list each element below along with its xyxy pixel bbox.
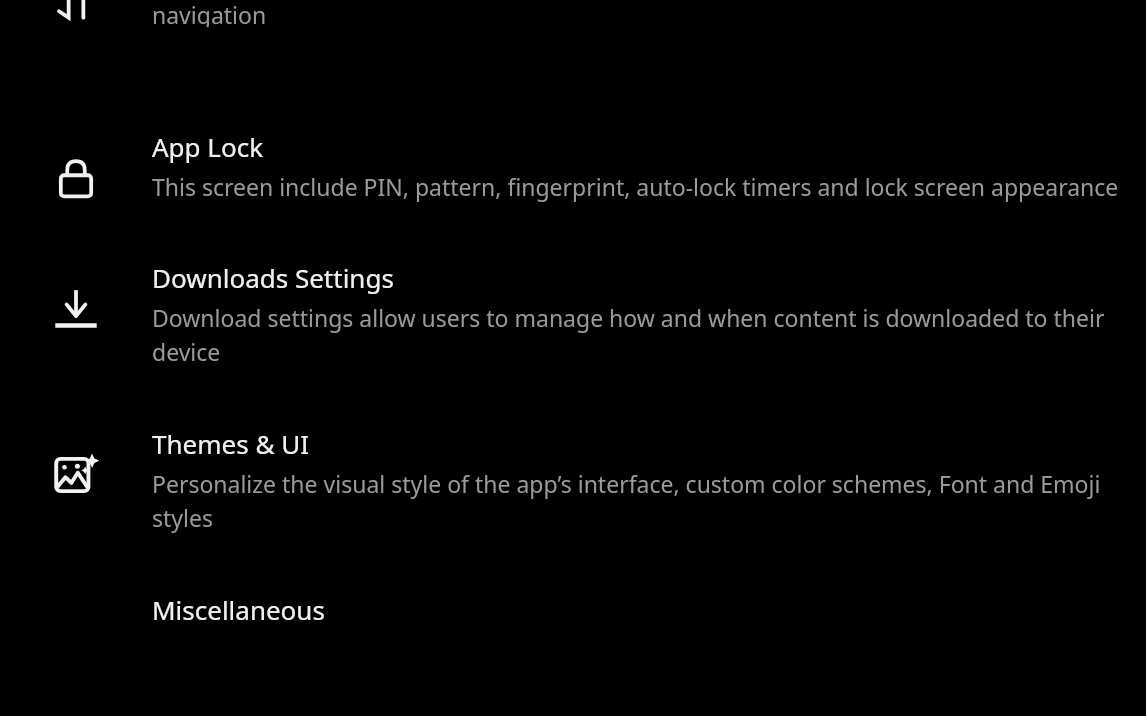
staticText: This screen include PIN, pattern, finger… <box>152 171 1119 202</box>
staticText: Customize interactions like tap-and-hold… <box>152 0 1120 27</box>
staticText: Themes & UI <box>152 426 309 461</box>
staticText: Miscellaneous <box>152 592 325 627</box>
button[interactable]: Themes and UI <box>0 426 1146 534</box>
button[interactable]: Downloads Settings <box>0 260 1146 368</box>
staticText: Personalize the visual style of the app’… <box>152 468 1120 534</box>
button[interactable]: Miscellaneous <box>0 592 1146 627</box>
other: Themes and UI <box>53 452 99 498</box>
button[interactable]: App Lock <box>0 129 1146 202</box>
other: Downloads Settings <box>53 286 99 332</box>
staticText: Download settings allow users to manage … <box>152 302 1120 368</box>
staticText: Downloads Settings <box>152 260 394 295</box>
staticText: App Lock <box>152 129 264 164</box>
other: Gestures <box>53 0 99 27</box>
button[interactable]: Gestures <box>0 0 1146 27</box>
other: App Lock <box>53 155 99 201</box>
